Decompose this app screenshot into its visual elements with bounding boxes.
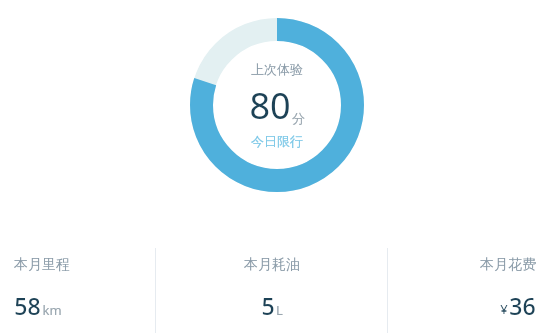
button[interactable]: 本月花费 (388, 248, 550, 333)
staticText: 上次体验 (251, 61, 303, 77)
staticText: 36 (509, 290, 536, 321)
staticText: ¥ (500, 300, 508, 318)
staticText: km (42, 301, 62, 319)
button[interactable]: 上次体验 (190, 18, 364, 192)
button[interactable]: 本月耗油 (156, 248, 387, 333)
staticText: 本月里程 (14, 256, 70, 274)
staticText: 今日限行 (251, 133, 303, 149)
staticText: 分 (292, 110, 305, 126)
staticText: 80 (249, 81, 291, 130)
staticText: 本月花费 (480, 256, 536, 274)
staticText: 5 (261, 290, 275, 321)
staticText: 58 (14, 290, 41, 321)
staticText: L (276, 301, 283, 319)
staticText: 本月耗油 (244, 256, 300, 274)
button[interactable]: 本月里程 (0, 248, 155, 333)
